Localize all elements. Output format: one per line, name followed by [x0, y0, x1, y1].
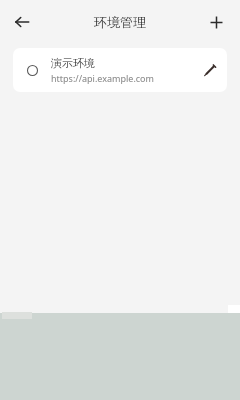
- staticText: 环境管理: [94, 14, 146, 30]
- button[interactable]: 演示环境: [13, 48, 227, 92]
- button[interactable]: Back: [6, 6, 38, 38]
- button[interactable]: Add environment: [200, 6, 232, 38]
- button[interactable]: Edit: [193, 48, 227, 92]
- staticText: https://api.example.com: [51, 72, 154, 84]
- staticText: 演示环境: [51, 56, 95, 70]
